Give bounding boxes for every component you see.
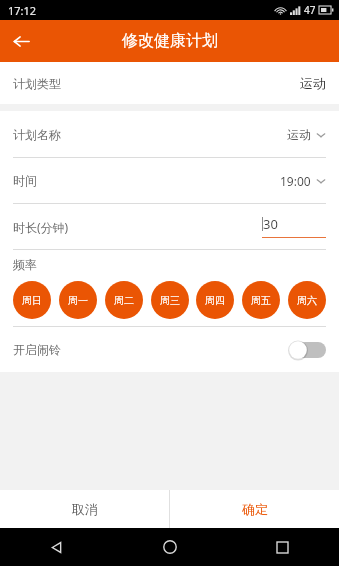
button[interactable]: 时间 — [0, 158, 339, 203]
button[interactable]: 计划名称 — [0, 111, 339, 157]
staticText: 确定 — [242, 501, 268, 517]
staticText: 周一 — [68, 294, 88, 307]
button[interactable]: 时长(分钟) — [0, 204, 339, 249]
staticText: 周四 — [205, 294, 225, 307]
button[interactable]: 周三 — [151, 281, 189, 319]
button[interactable]: 周五 — [242, 281, 280, 319]
button[interactable]: Recents — [226, 528, 339, 566]
staticText: 频率 — [13, 257, 37, 272]
button[interactable]: Toggle alarm — [288, 340, 326, 360]
button[interactable]: 确定 — [170, 490, 339, 528]
button[interactable]: 周二 — [105, 281, 143, 319]
button[interactable]: 周六 — [288, 281, 326, 319]
staticText: 17:12 — [8, 3, 37, 18]
staticText: 时长(分钟) — [13, 219, 69, 235]
staticText: 周五 — [251, 294, 271, 307]
button[interactable]: Back — [0, 528, 113, 566]
staticText: 时间 — [13, 173, 37, 188]
staticText: 运动 — [300, 75, 326, 91]
staticText: 计划名称 — [13, 127, 61, 142]
button[interactable]: 周四 — [196, 281, 234, 319]
button[interactable]: Home — [113, 528, 226, 566]
staticText: 30 — [263, 215, 278, 233]
staticText: 19:00 — [280, 173, 311, 189]
staticText: 周日 — [22, 294, 42, 307]
staticText: 取消 — [72, 501, 98, 517]
staticText: 修改健康计划 — [122, 31, 218, 51]
staticText: 周二 — [114, 294, 134, 307]
staticText: 计划类型 — [13, 76, 61, 91]
button[interactable]: Back — [0, 20, 42, 62]
staticText: 开启闹铃 — [13, 342, 61, 357]
staticText: 周六 — [297, 294, 317, 307]
staticText: 47 — [304, 3, 316, 17]
button[interactable]: 取消 — [0, 490, 169, 528]
button[interactable]: 计划类型 — [0, 62, 339, 104]
staticText: 周三 — [160, 294, 180, 307]
staticText: 运动 — [287, 127, 311, 142]
button[interactable]: 开启闹铃 — [0, 327, 339, 372]
button[interactable]: 周日 — [13, 281, 51, 319]
button[interactable]: 周一 — [59, 281, 97, 319]
